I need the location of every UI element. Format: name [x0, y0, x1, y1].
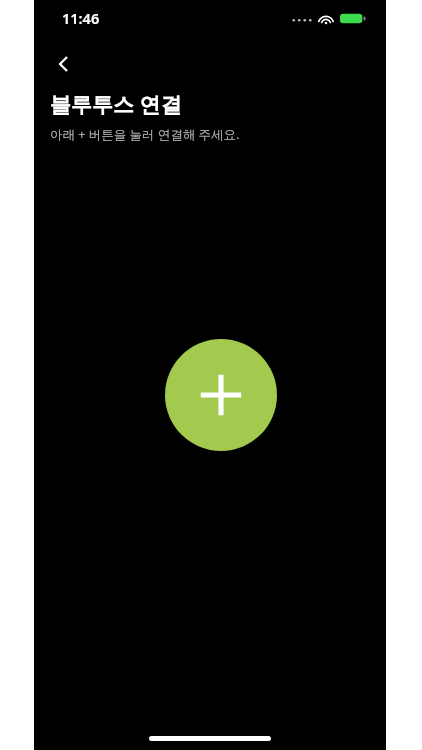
button[interactable]: Add Bluetooth device — [165, 339, 277, 451]
staticText: 블루투스 연결 — [50, 90, 182, 119]
button[interactable]: Back — [44, 44, 84, 84]
staticText: 11:46 — [62, 8, 100, 28]
staticText: 아래 + 버튼을 눌러 연결해 주세요. — [50, 126, 240, 143]
